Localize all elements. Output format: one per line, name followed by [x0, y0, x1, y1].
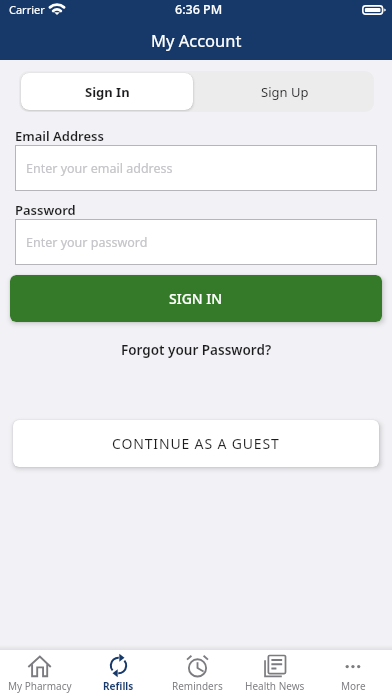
- button[interactable]: Health News: [236, 650, 314, 696]
- staticText: Enter your email address: [26, 160, 173, 177]
- button[interactable]: Enter your password: [15, 219, 377, 265]
- staticText: 6:36 PM: [175, 1, 223, 18]
- staticText: Enter your password: [26, 234, 148, 251]
- button[interactable]: More: [314, 650, 392, 696]
- staticText: My Account: [151, 29, 242, 51]
- button[interactable]: Reminders: [158, 650, 236, 696]
- staticText: Password: [15, 201, 76, 219]
- staticText: Health News: [245, 679, 305, 693]
- staticText: More: [341, 679, 366, 693]
- staticText: Refills: [103, 679, 134, 693]
- button[interactable]: Sign In: [21, 73, 193, 110]
- staticText: My Pharmacy: [8, 679, 72, 693]
- button[interactable]: My Pharmacy: [0, 650, 79, 696]
- button[interactable]: Forgot your Password?: [117, 337, 276, 363]
- staticText: Reminders: [172, 679, 223, 693]
- staticText: Carrier: [9, 2, 45, 17]
- staticText: Sign In: [85, 83, 130, 101]
- staticText: SIGN IN: [169, 289, 223, 308]
- button[interactable]: Refills: [79, 650, 158, 696]
- button[interactable]: Enter your email address: [15, 145, 377, 191]
- staticText: Sign Up: [261, 83, 309, 101]
- staticText: CONTINUE AS A GUEST: [112, 434, 280, 453]
- button[interactable]: Sign Up: [195, 71, 374, 112]
- button[interactable]: SIGN IN: [10, 275, 382, 322]
- button[interactable]: CONTINUE AS A GUEST: [13, 420, 379, 467]
- staticText: Email Address: [15, 127, 104, 145]
